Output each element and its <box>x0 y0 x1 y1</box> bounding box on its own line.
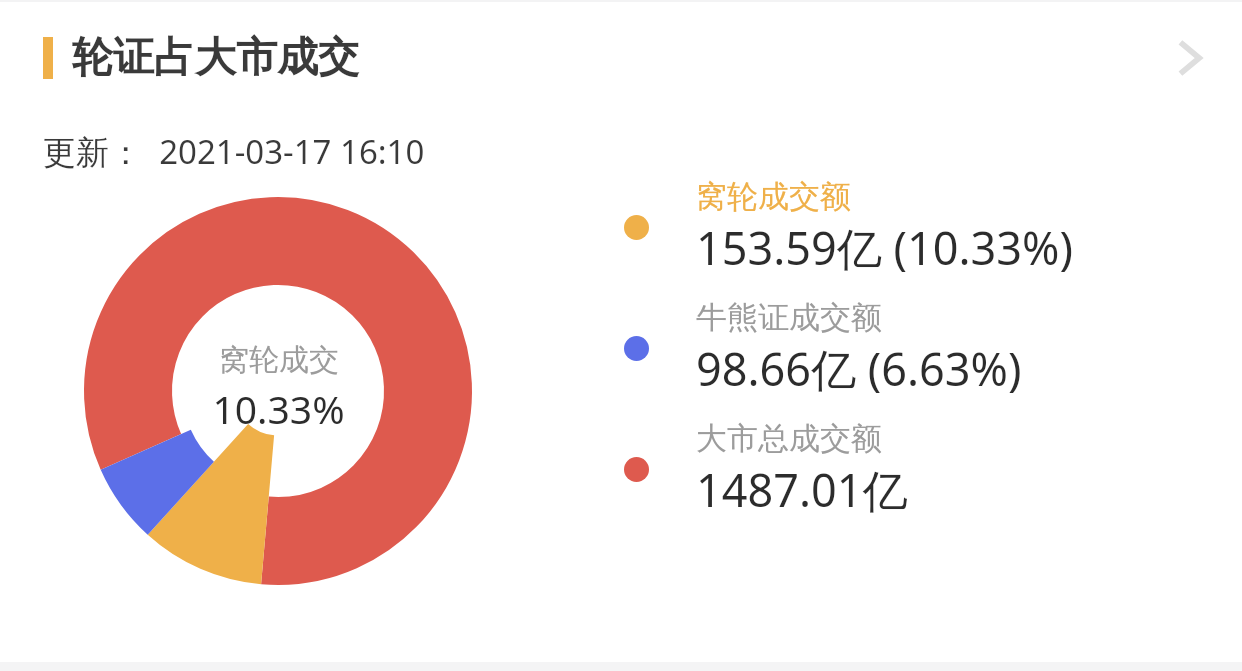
staticText: 牛熊证成交额 <box>696 298 882 337</box>
button[interactable]: 窝轮成交额 <box>608 177 1208 278</box>
staticText: 轮证占大市成交 <box>72 32 359 84</box>
button[interactable]: 查看详情 <box>1144 12 1236 104</box>
staticText: 10.33% <box>212 382 345 435</box>
staticText: 大市总成交额 <box>696 419 882 458</box>
staticText: 98.66亿 (6.63%) <box>696 338 1022 399</box>
staticText: 更新： 2021-03-17 16:10 <box>43 129 425 174</box>
staticText: 窝轮成交 <box>219 341 339 379</box>
staticText: 1487.01亿 <box>696 459 908 520</box>
button[interactable]: 牛熊证成交额 <box>608 298 1208 399</box>
staticText: 153.59亿 (10.33%) <box>696 217 1073 278</box>
button[interactable]: 轮证占大市成交 <box>0 0 1242 116</box>
staticText: 窝轮成交额 <box>696 177 851 216</box>
button[interactable]: 大市总成交额 <box>608 419 1208 520</box>
